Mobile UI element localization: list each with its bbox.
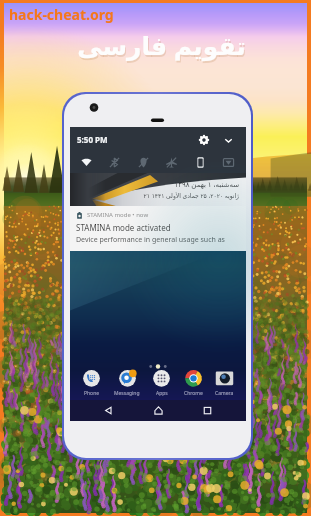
button[interactable]: Home <box>148 400 169 421</box>
staticText: Camera <box>215 390 234 397</box>
button[interactable]: Back <box>98 400 119 421</box>
button[interactable]: Messaging <box>114 370 140 397</box>
staticText: STAMINA mode activated <box>76 222 171 233</box>
button[interactable]: Phone <box>82 370 101 397</box>
staticText: Messaging <box>114 390 140 397</box>
staticText: تقویم فارسی <box>77 28 246 62</box>
button[interactable]: Chrome <box>184 370 203 397</box>
button[interactable]: Location <box>133 152 154 173</box>
staticText: Chrome <box>184 390 203 397</box>
button[interactable]: Settings <box>196 132 212 148</box>
staticText: Device performance in general usage such… <box>76 235 240 245</box>
button[interactable]: Collapse <box>220 132 236 148</box>
staticText: Apps <box>156 390 168 397</box>
button[interactable]: Recents <box>197 400 218 421</box>
staticText: STAMINA mode • now <box>87 211 149 219</box>
button[interactable]: Cast <box>218 152 239 173</box>
button[interactable]: STAMINA mode • now <box>70 206 246 251</box>
button[interactable]: Auto rotate <box>190 152 211 173</box>
button[interactable]: Camera <box>215 370 234 397</box>
button[interactable]: Bluetooth <box>104 152 125 173</box>
button[interactable]: Airplane mode <box>161 152 182 173</box>
staticText: hack-cheat.org <box>9 5 114 24</box>
staticText: تقویم فارسی <box>78 30 247 64</box>
button[interactable]: Apps <box>152 370 171 397</box>
staticText: سه‌شنبه، ۱ بهمن ۱۳۹۸ <box>174 180 239 190</box>
staticText: 5:50 PM <box>77 134 108 145</box>
button[interactable]: سه‌شنبه، ۱ بهمن ۱۳۹۸ <box>70 173 246 206</box>
staticText: ۲۱ ژانویه ۲۰۲۰، ۲۵ جمادی الأولی ۱۴۴۱ <box>143 192 239 200</box>
staticText: Phone <box>84 390 100 397</box>
button[interactable]: Wi-Fi <box>76 152 97 173</box>
